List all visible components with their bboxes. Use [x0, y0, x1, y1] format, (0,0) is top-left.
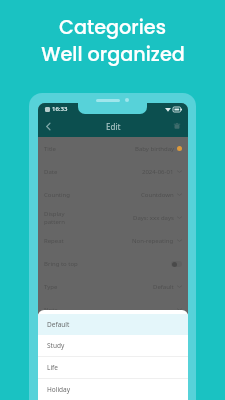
staticText: Default [153, 283, 174, 291]
button[interactable]: Life [38, 357, 188, 378]
staticText: Holiday [47, 385, 71, 394]
staticText: Baby birthday [135, 145, 175, 153]
staticText: Well organized [41, 41, 185, 68]
staticText: 2024-06-01 [142, 168, 174, 176]
staticText: Bring to top [44, 260, 78, 268]
staticText: Type [44, 283, 58, 291]
staticText: Days: xxx days [133, 214, 174, 222]
staticText: Repeat [44, 237, 64, 245]
button[interactable]: Back [38, 116, 58, 136]
button[interactable]: Holiday [38, 379, 188, 400]
staticText: Display pattern [44, 210, 65, 226]
staticText: Countdown [141, 191, 174, 199]
button[interactable]: Study [38, 335, 188, 356]
staticText: Date [44, 168, 58, 176]
button[interactable]: Delete [167, 116, 187, 136]
staticText: Non-repeating [132, 237, 174, 245]
staticText: Title [44, 145, 56, 153]
staticText: Study [47, 341, 65, 350]
staticText: Note [44, 306, 58, 314]
staticText: Default [47, 320, 70, 329]
staticText: Life [47, 363, 58, 372]
staticText: Counting [44, 191, 70, 199]
button[interactable]: Default [38, 314, 188, 335]
staticText: Edit [106, 121, 121, 132]
staticText: 16:33 [52, 105, 68, 113]
staticText: Categories [59, 14, 166, 41]
button[interactable]: Note [38, 298, 188, 321]
button[interactable]: Title [38, 137, 188, 160]
